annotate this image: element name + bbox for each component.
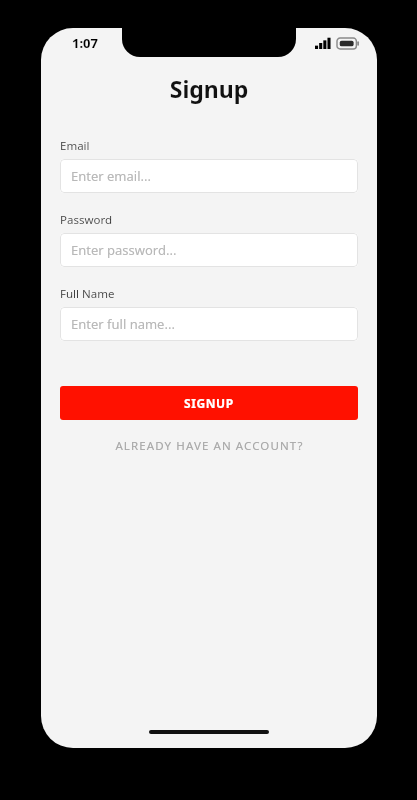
other: Notch: [122, 0, 296, 57]
button[interactable]: SIGNUP: [60, 386, 358, 420]
button[interactable]: Enter password...: [60, 233, 358, 267]
button[interactable]: Enter email...: [60, 159, 358, 193]
staticText: Enter email...: [71, 167, 151, 185]
button[interactable]: Enter full name...: [60, 307, 358, 341]
staticText: ALREADY HAVE AN ACCOUNT?: [115, 438, 304, 454]
button[interactable]: ALREADY HAVE AN ACCOUNT?: [60, 438, 358, 454]
staticText: SIGNUP: [184, 395, 234, 411]
staticText: 1:07: [72, 34, 98, 52]
staticText: Password: [60, 212, 113, 228]
staticText: Email: [60, 138, 90, 154]
staticText: Full Name: [60, 286, 115, 302]
staticText: Signup: [60, 73, 358, 104]
staticText: Enter full name...: [71, 315, 175, 333]
staticText: Enter password...: [71, 241, 177, 259]
